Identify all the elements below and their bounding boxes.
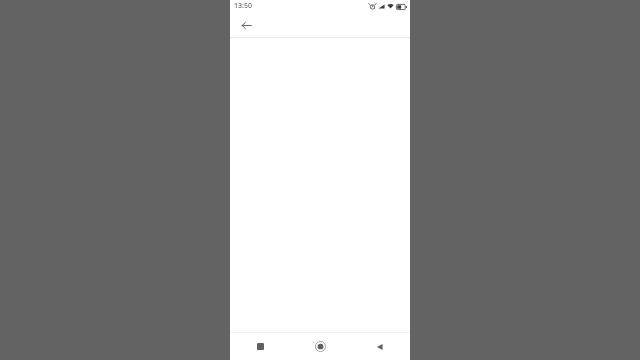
button[interactable]: Home (290, 333, 350, 360)
button[interactable]: Back (350, 333, 410, 360)
staticText: 13:50 (234, 1, 252, 11)
button[interactable]: Back (236, 15, 256, 35)
button[interactable]: Recent apps (230, 333, 290, 360)
